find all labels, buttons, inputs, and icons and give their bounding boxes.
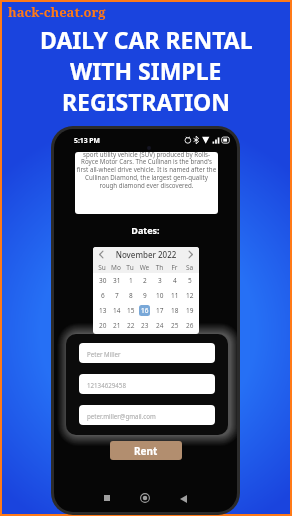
- button[interactable]: 25: [169, 320, 180, 331]
- button[interactable]: 11: [169, 290, 180, 301]
- staticText: 12: [186, 291, 194, 300]
- staticText: 17: [156, 306, 164, 315]
- button[interactable]: 3: [154, 275, 165, 286]
- staticText: 19: [186, 306, 194, 315]
- button[interactable]: Rent: [110, 441, 182, 460]
- staticText: We: [137, 263, 152, 272]
- staticText: 4: [173, 276, 177, 285]
- button[interactable]: peter.miller@gmail.com: [79, 405, 215, 425]
- button[interactable]: 1: [125, 275, 136, 286]
- staticText: WITH SIMPLE: [70, 55, 222, 86]
- staticText: 5: [188, 276, 192, 285]
- button[interactable]: 8: [125, 290, 136, 301]
- button[interactable]: 20: [97, 320, 108, 331]
- staticText: 21: [113, 321, 121, 330]
- staticText: 9: [143, 291, 147, 300]
- button[interactable]: 19: [184, 305, 195, 316]
- staticText: REGISTRATION: [62, 86, 231, 117]
- staticText: Dates:: [54, 224, 237, 236]
- staticText: 10: [156, 291, 164, 300]
- button[interactable]: 6: [97, 290, 108, 301]
- button[interactable]: 16: [139, 305, 150, 316]
- button[interactable]: Home: [133, 486, 157, 510]
- button[interactable]: 12: [184, 290, 195, 301]
- staticText: 12134629458: [87, 381, 126, 389]
- staticText: 25: [171, 321, 179, 330]
- staticText: Sa: [182, 263, 197, 272]
- staticText: 31: [113, 276, 121, 285]
- staticText: 16: [141, 306, 149, 315]
- button[interactable]: 26: [184, 320, 195, 331]
- staticText: 18: [171, 306, 179, 315]
- staticText: Rent: [134, 444, 158, 458]
- staticText: 3: [158, 276, 162, 285]
- button[interactable]: 5: [184, 275, 195, 286]
- staticText: Fr: [167, 263, 182, 272]
- button[interactable]: 30: [97, 275, 108, 286]
- staticText: 15: [127, 306, 135, 315]
- button[interactable]: 2: [139, 275, 150, 286]
- staticText: 8: [129, 291, 133, 300]
- staticText: 1: [129, 276, 133, 285]
- button[interactable]: 10: [154, 290, 165, 301]
- staticText: DAILY CAR RENTAL: [40, 24, 253, 55]
- staticText: 30: [99, 276, 107, 285]
- staticText: 2: [143, 276, 147, 285]
- button[interactable]: Next month: [185, 249, 196, 260]
- button[interactable]: Previous month: [96, 249, 107, 260]
- staticText: 23: [141, 321, 149, 330]
- staticText: Tu: [123, 263, 137, 272]
- button[interactable]: 13: [97, 305, 108, 316]
- staticText: peter.miller@gmail.com: [87, 412, 156, 420]
- staticText: 5:13 PM: [74, 136, 100, 145]
- staticText: hack-cheat.org: [8, 3, 106, 21]
- staticText: 7: [115, 291, 119, 300]
- staticText: Th: [152, 263, 167, 272]
- button[interactable]: 17: [154, 305, 165, 316]
- button[interactable]: 4: [169, 275, 180, 286]
- button[interactable]: 23: [139, 320, 150, 331]
- button[interactable]: 15: [125, 305, 136, 316]
- button[interactable]: 14: [111, 305, 122, 316]
- button[interactable]: 31: [111, 275, 122, 286]
- staticText: 22: [127, 321, 135, 330]
- staticText: 13: [99, 306, 107, 315]
- button[interactable]: 12134629458: [79, 374, 215, 394]
- button[interactable]: 24: [154, 320, 165, 331]
- button[interactable]: 7: [111, 290, 122, 301]
- staticText: Su: [95, 263, 109, 272]
- staticText: sport utility vehicle (SUV) produced by …: [76, 152, 217, 190]
- button[interactable]: 22: [125, 320, 136, 331]
- button[interactable]: 18: [169, 305, 180, 316]
- staticText: 24: [156, 321, 164, 330]
- button[interactable]: Peter Miller: [79, 343, 215, 363]
- button[interactable]: 9: [139, 290, 150, 301]
- staticText: 26: [186, 321, 194, 330]
- button[interactable]: Recents: [95, 486, 119, 510]
- button[interactable]: 21: [111, 320, 122, 331]
- staticText: Mo: [109, 263, 123, 272]
- staticText: 14: [113, 306, 121, 315]
- staticText: 6: [101, 291, 105, 300]
- button[interactable]: Back: [171, 487, 195, 511]
- staticText: Peter Miller: [87, 350, 121, 358]
- staticText: 20: [99, 321, 107, 330]
- staticText: 11: [171, 291, 179, 300]
- staticText: November 2022: [107, 249, 185, 260]
